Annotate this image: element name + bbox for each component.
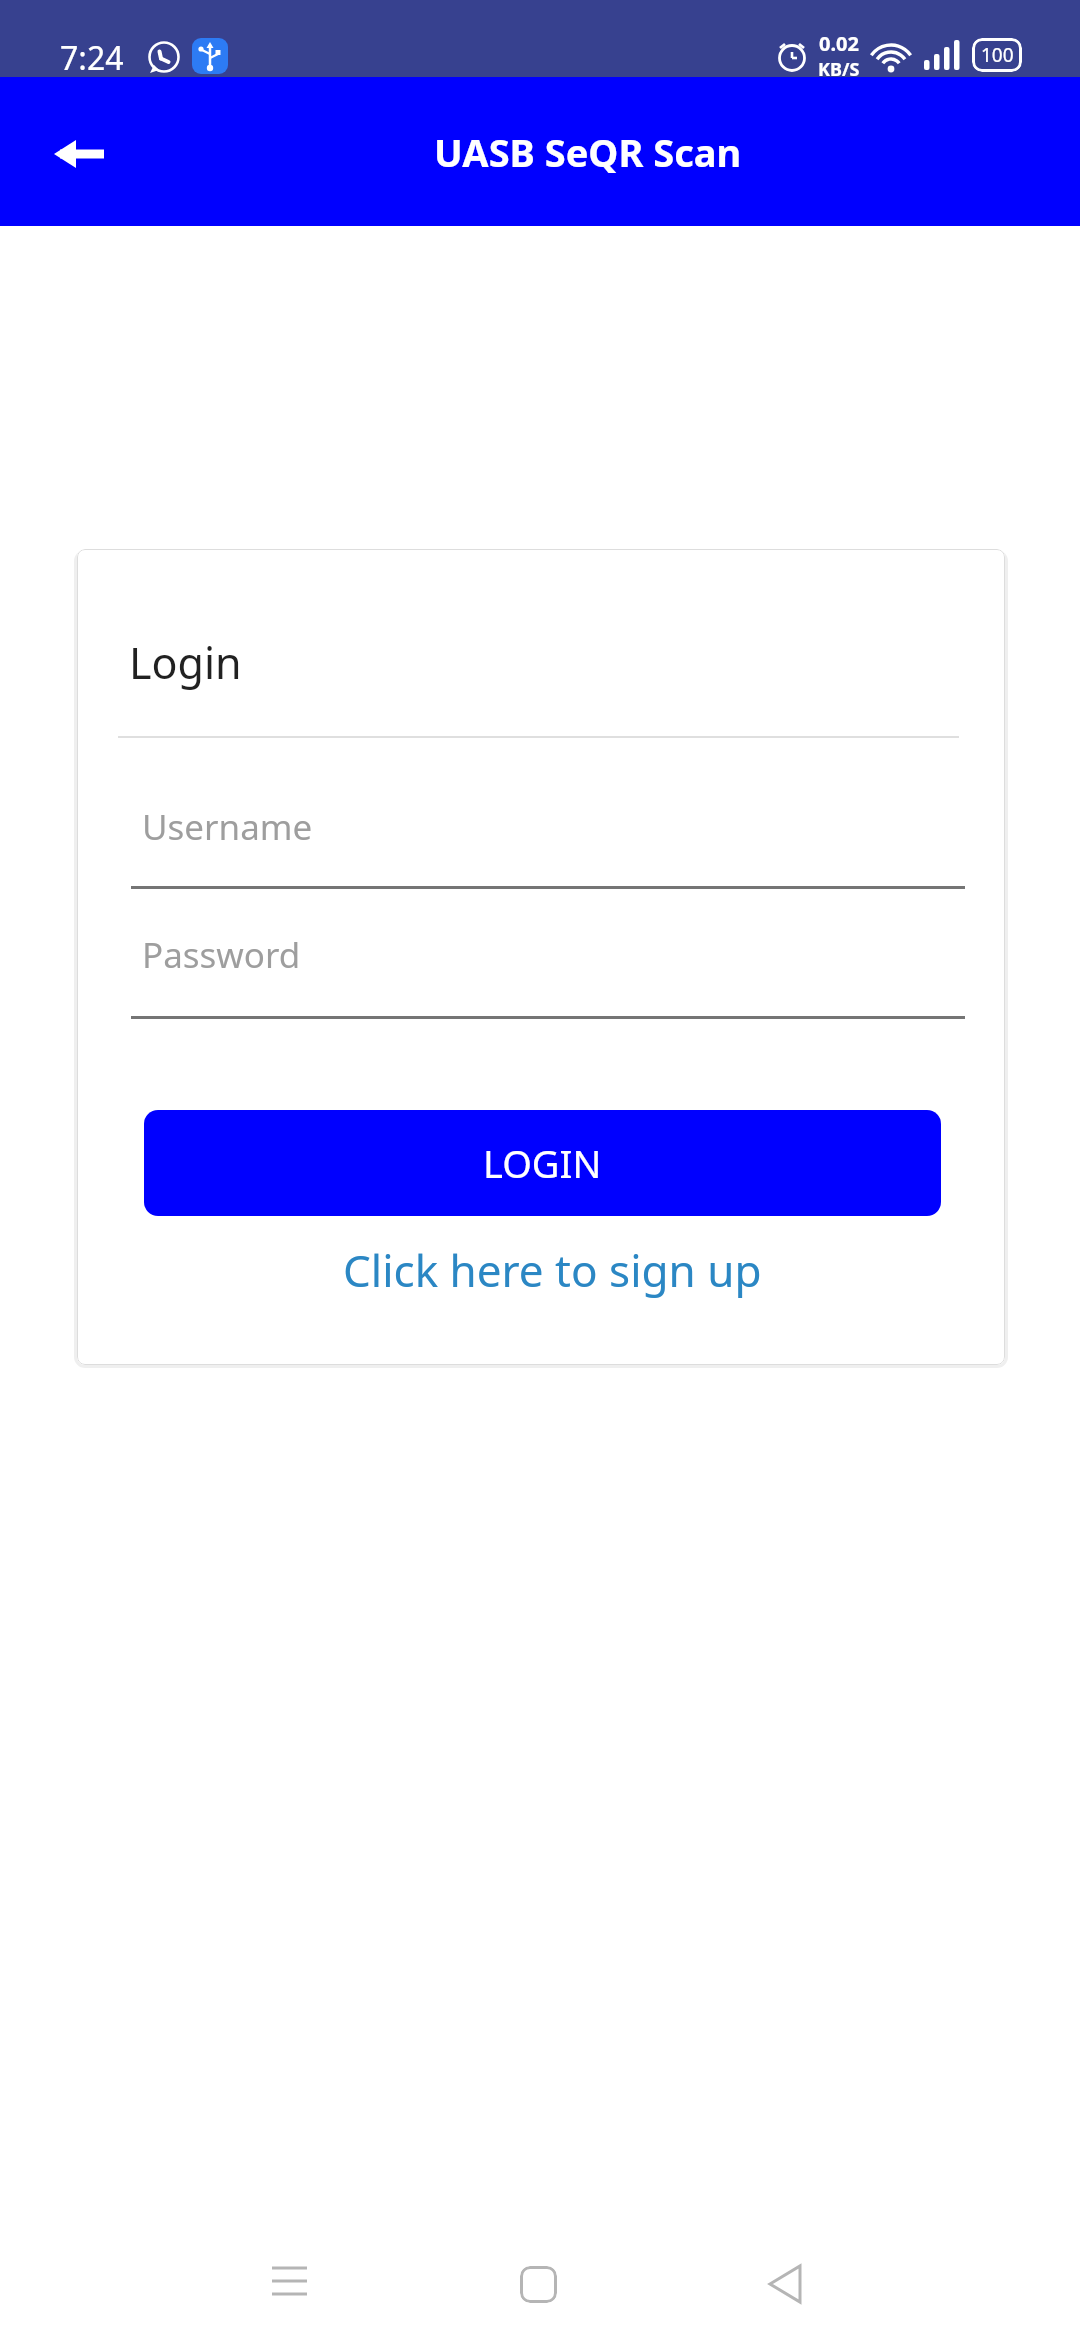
button[interactable] bbox=[40, 129, 120, 179]
staticText: Click here to sign up bbox=[343, 1240, 762, 1300]
staticText: 100 bbox=[981, 42, 1014, 68]
staticText: Login bbox=[129, 633, 242, 692]
staticText: 7:24 bbox=[60, 36, 124, 80]
staticText: 0.02 bbox=[819, 30, 859, 57]
button[interactable]: Click here to sign up bbox=[77, 1235, 1005, 1305]
staticText: KB/S bbox=[818, 57, 860, 82]
staticText: Username bbox=[142, 803, 313, 851]
button[interactable]: LOGIN bbox=[144, 1110, 941, 1216]
staticText: Password bbox=[142, 931, 301, 979]
staticText: UASB SeQR Scan bbox=[434, 126, 742, 178]
staticText: LOGIN bbox=[483, 1137, 602, 1189]
